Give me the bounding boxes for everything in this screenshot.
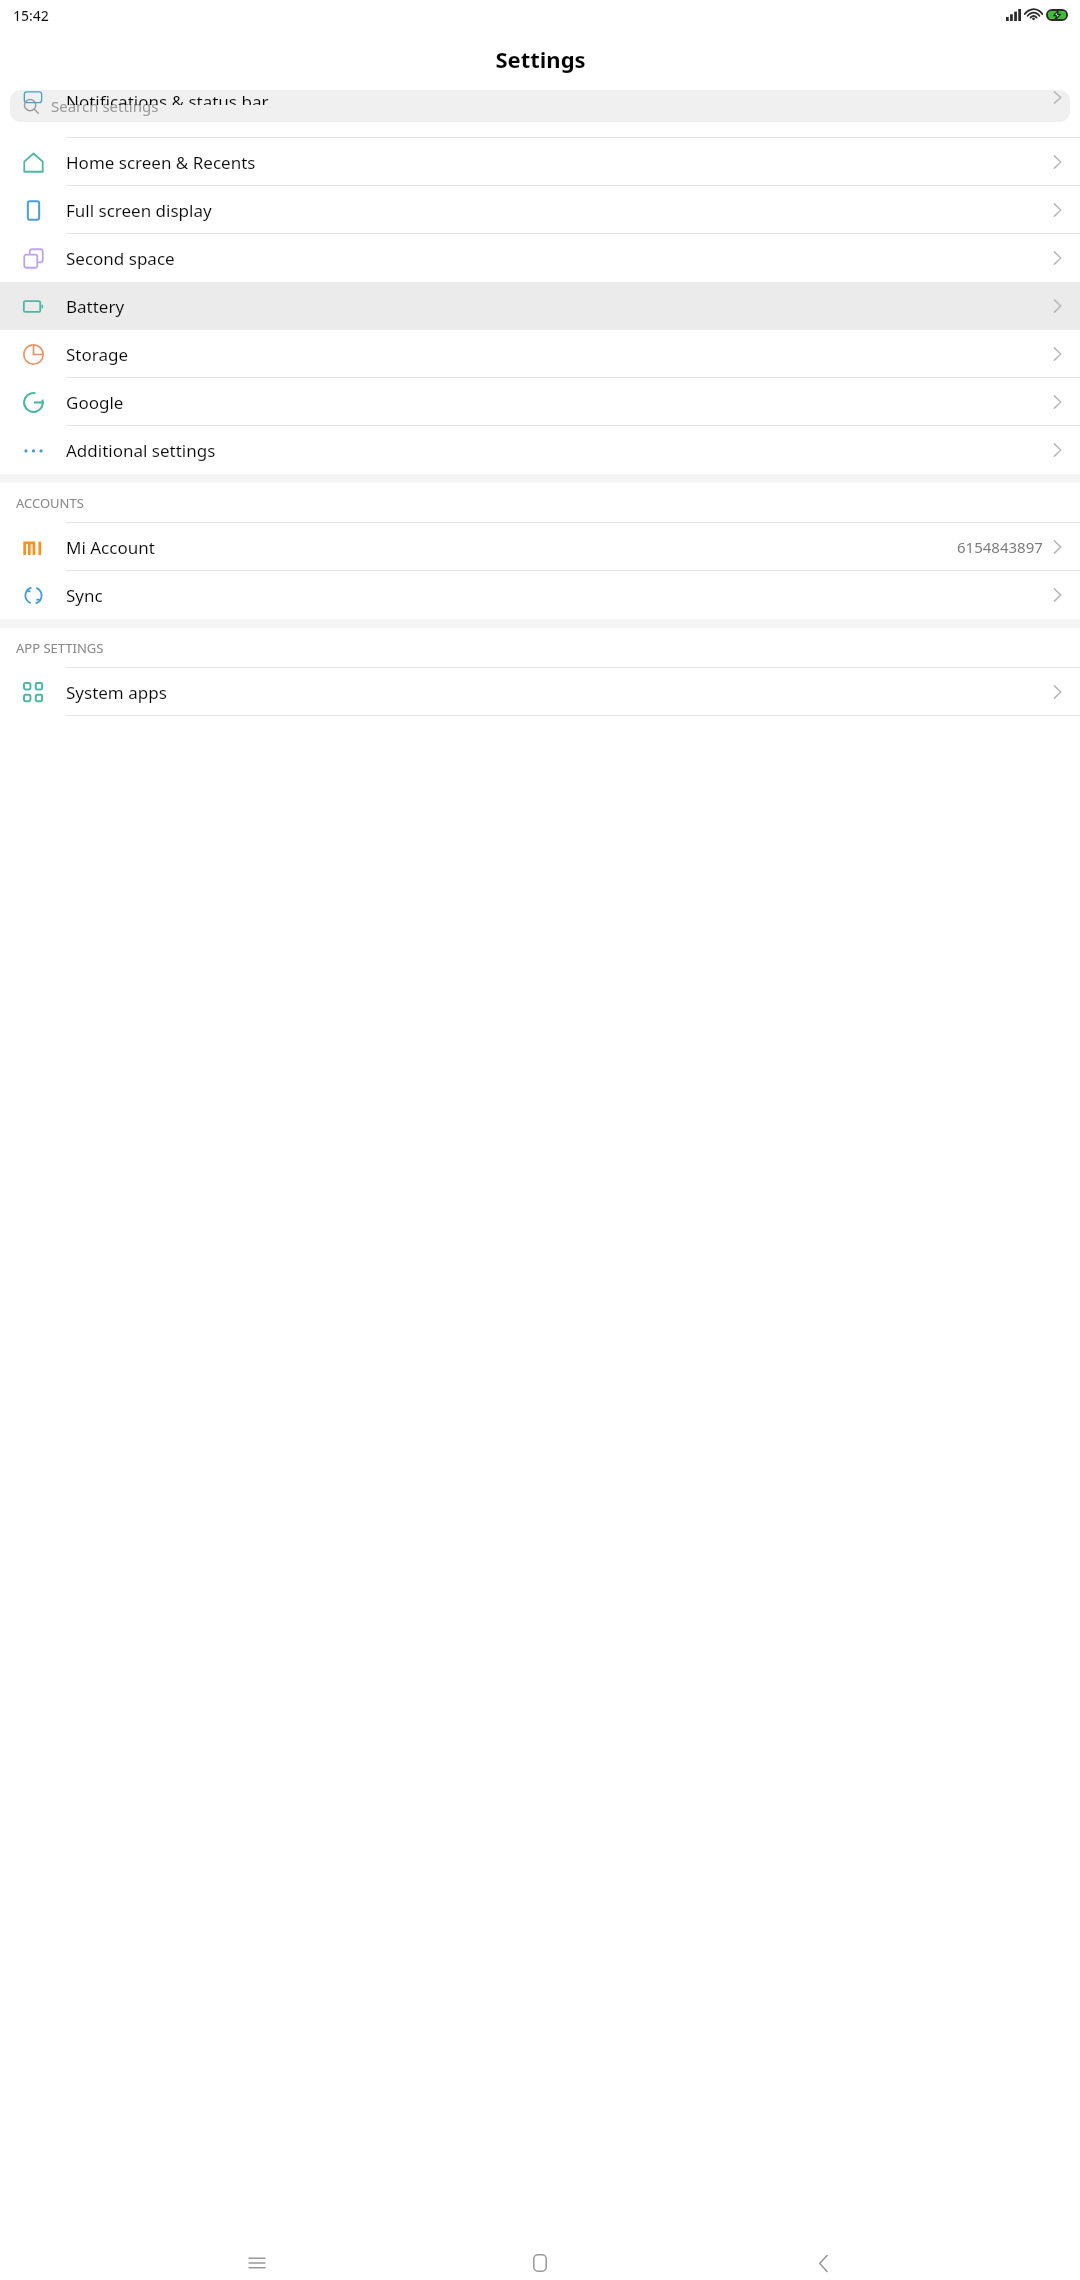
staticText: Sync: [66, 584, 103, 607]
button[interactable]: Notifications & status bar: [0, 123, 1080, 138]
button[interactable]: Battery: [0, 282, 1080, 330]
staticText: Second space: [66, 247, 175, 270]
button[interactable]: Recent apps: [231, 2246, 283, 2280]
staticText: Battery: [66, 295, 125, 318]
button[interactable]: Back: [797, 2246, 849, 2280]
staticText: Search settings: [51, 96, 159, 116]
button[interactable]: Mi Account: [0, 523, 1080, 571]
staticText: Mi Account: [66, 536, 155, 559]
staticText: Storage: [66, 343, 129, 366]
staticText: Google: [66, 391, 124, 414]
staticText: 6154843897: [957, 537, 1043, 557]
button[interactable]: System apps: [0, 668, 1080, 716]
button[interactable]: Home: [514, 2246, 566, 2280]
button[interactable]: Full screen display: [0, 186, 1080, 234]
button[interactable]: Sync: [0, 571, 1080, 619]
staticText: System apps: [66, 681, 167, 704]
staticText: Home screen & Recents: [66, 151, 256, 174]
staticText: Full screen display: [66, 199, 212, 222]
staticText: Notifications & status bar: [66, 90, 269, 105]
button[interactable]: Storage: [0, 330, 1080, 378]
button[interactable]: Home screen & Recents: [0, 138, 1080, 186]
button[interactable]: Second space: [0, 234, 1080, 282]
staticText: APP SETTINGS: [16, 639, 104, 657]
button[interactable]: Google: [0, 378, 1080, 426]
staticText: Additional settings: [66, 439, 216, 462]
staticText: 15:42: [13, 6, 49, 25]
button[interactable]: Search settings: [10, 90, 1070, 122]
staticText: Settings: [495, 44, 586, 74]
button[interactable]: Additional settings: [0, 426, 1080, 474]
staticText: ACCOUNTS: [16, 494, 84, 512]
